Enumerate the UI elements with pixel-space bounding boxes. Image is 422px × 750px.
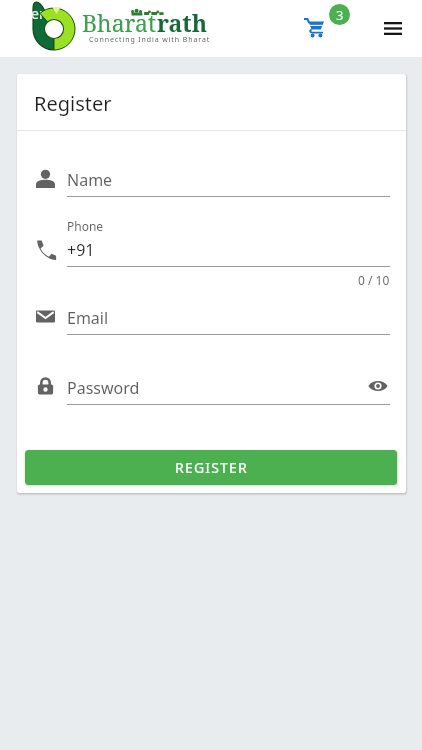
button[interactable]: Toggle password visibility xyxy=(365,373,391,399)
button[interactable]: REGISTER xyxy=(25,450,397,485)
staticText: Password xyxy=(67,377,140,399)
staticText: 0 / 10 xyxy=(358,272,390,288)
staticText: Connecting India with Bharat xyxy=(89,35,211,45)
staticText: Bharat xyxy=(82,7,157,38)
staticText: Name xyxy=(67,169,113,191)
staticText: Email xyxy=(67,307,109,329)
staticText: +91 xyxy=(67,239,95,261)
staticText: rath xyxy=(157,7,208,38)
staticText: ern xyxy=(31,4,54,23)
staticText: Phone xyxy=(67,218,104,234)
button[interactable]: Shopping cart, 3 items xyxy=(300,2,352,42)
staticText: Register xyxy=(34,90,112,117)
staticText: 3 xyxy=(336,6,344,24)
button[interactable]: Menu xyxy=(376,14,404,44)
staticText: REGISTER xyxy=(175,458,248,477)
